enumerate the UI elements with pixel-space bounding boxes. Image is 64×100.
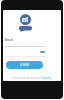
button[interactable]: Show password bbox=[40, 51, 45, 53]
button[interactable]: LOGIN bbox=[6, 61, 43, 69]
staticText: Don't have an account? bbox=[13, 76, 42, 80]
button[interactable]: Sign Up bbox=[42, 76, 52, 80]
staticText: LOGIN bbox=[20, 63, 29, 67]
staticText: ni bbox=[22, 15, 29, 24]
staticText: Email bbox=[5, 38, 13, 42]
